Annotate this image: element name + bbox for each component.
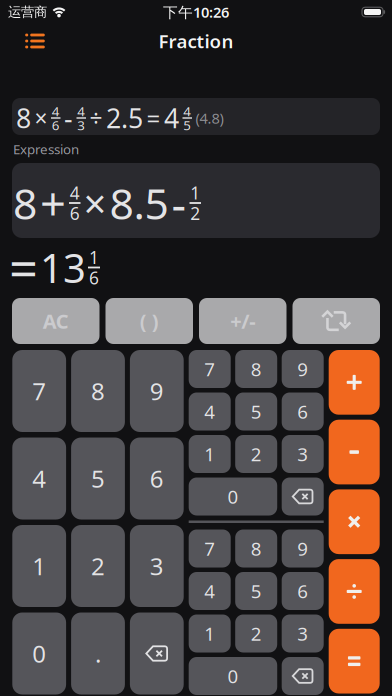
staticText: 下午10:26 (163, 2, 229, 22)
button[interactable]: 1 (12, 525, 66, 607)
button[interactable]: 5 (71, 437, 125, 519)
button[interactable]: 7 (12, 350, 66, 432)
staticText: 3 (297, 442, 308, 466)
staticText: 2 (190, 202, 200, 225)
staticText: 3 (297, 621, 308, 646)
staticText: 8 (13, 175, 37, 231)
staticText: 7 (204, 536, 215, 561)
staticText: 5 (183, 116, 191, 134)
button[interactable]: Parentheses (105, 298, 193, 344)
button[interactable]: 4 (189, 392, 231, 430)
button[interactable]: 9 (282, 350, 324, 388)
staticText: 4 (77, 102, 85, 120)
button[interactable]: Convert (292, 298, 380, 344)
staticText: - (171, 173, 186, 233)
button[interactable]: History (25, 33, 45, 48)
button[interactable]: 6 (282, 572, 324, 610)
staticText: 1 (32, 550, 46, 582)
staticText: 9 (297, 357, 308, 381)
button[interactable]: 0 (189, 477, 277, 515)
staticText: +/- (230, 308, 255, 334)
staticText: Expression (13, 140, 79, 158)
staticText: 6 (150, 463, 164, 494)
button[interactable]: 7 (189, 529, 231, 567)
button[interactable]: 9 (282, 529, 324, 567)
button[interactable]: 5 (235, 572, 277, 610)
button[interactable]: 8 (12, 98, 380, 135)
button[interactable]: Subtract (329, 420, 380, 484)
button[interactable]: 1 (189, 435, 231, 473)
button[interactable]: 5 (235, 392, 277, 430)
staticText: 0 (227, 664, 238, 688)
staticText: 4 (164, 100, 179, 136)
staticText: 4 (183, 102, 191, 120)
button[interactable]: 8 (235, 350, 277, 388)
staticText: 1 (204, 442, 215, 466)
staticText: 0 (227, 484, 238, 509)
staticText: 0 (32, 638, 46, 669)
button[interactable]: 2 (235, 614, 277, 652)
button[interactable]: 8 (71, 350, 125, 432)
button[interactable]: 0 (12, 612, 66, 694)
button[interactable]: Plus minus (199, 298, 286, 344)
button[interactable]: 2 (71, 525, 125, 607)
staticText: 6 (297, 579, 308, 603)
staticText: . (95, 638, 101, 669)
button[interactable]: Delete (130, 612, 184, 694)
staticText: 1 (204, 621, 215, 646)
button[interactable]: 3 (130, 525, 184, 607)
staticText: 5 (91, 463, 105, 494)
staticText: 9 (150, 375, 164, 407)
button[interactable]: 0 (189, 657, 277, 695)
staticText: 4 (70, 181, 80, 204)
staticText: 1 (190, 181, 200, 204)
staticText: 6 (297, 399, 308, 424)
button[interactable]: Equals (329, 629, 380, 693)
button[interactable]: 3 (282, 435, 324, 473)
staticText: - (64, 100, 73, 136)
staticText: 8 (91, 375, 105, 407)
button[interactable]: Delete (282, 657, 324, 695)
staticText: 7 (204, 357, 215, 381)
button[interactable]: All clear (12, 298, 99, 344)
button[interactable]: 4 (189, 572, 231, 610)
button[interactable]: 4 (12, 437, 66, 519)
staticText: (4.8) (195, 108, 223, 128)
staticText: 4 (32, 463, 46, 494)
button[interactable]: 2 (235, 435, 277, 473)
staticText: 6 (70, 202, 80, 225)
button[interactable]: Divide (329, 559, 380, 624)
staticText: Fraction (158, 29, 233, 53)
staticText: 6 (89, 266, 99, 289)
button[interactable]: 7 (189, 350, 231, 388)
staticText: 5 (251, 399, 262, 424)
staticText: 4 (204, 579, 215, 603)
button[interactable]: . (71, 612, 125, 694)
button[interactable]: Delete (282, 477, 324, 515)
staticText: 9 (297, 536, 308, 561)
staticText: × (34, 103, 47, 133)
staticText: AC (43, 308, 69, 334)
staticText: 6 (52, 116, 60, 134)
staticText: + (40, 173, 66, 233)
staticText: 2 (251, 442, 262, 466)
button[interactable]: 1 (189, 614, 231, 652)
button[interactable]: 6 (130, 437, 184, 519)
staticText: 运营商 (8, 4, 47, 20)
staticText: = (9, 234, 38, 301)
staticText: 5 (251, 579, 262, 603)
staticText: ( ) (140, 308, 159, 334)
staticText: 1 (89, 246, 99, 269)
button[interactable]: Add (329, 350, 380, 415)
button[interactable]: Multiply (329, 489, 380, 554)
staticText: = (146, 102, 160, 134)
staticText: 2 (91, 550, 105, 582)
button[interactable]: 6 (282, 392, 324, 430)
button[interactable]: 3 (282, 614, 324, 652)
staticText: 7 (32, 375, 46, 407)
button[interactable]: 9 (130, 350, 184, 432)
staticText: 4 (204, 399, 215, 424)
staticText: 8 (251, 536, 262, 561)
staticText: 13 (40, 241, 86, 294)
button[interactable]: 8 (235, 529, 277, 567)
